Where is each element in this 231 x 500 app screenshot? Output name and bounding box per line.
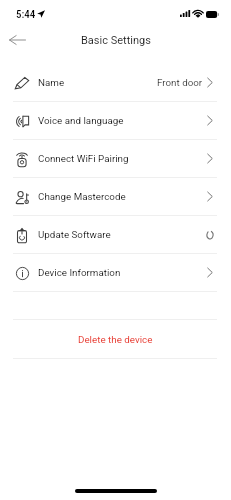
button[interactable]: Connect WiFi Pairing: [0, 140, 231, 177]
staticText: 5:44: [16, 8, 36, 21]
button[interactable]: Device Information: [0, 254, 231, 291]
staticText: Connect WiFi Pairing: [38, 153, 129, 164]
button[interactable]: Delete the device: [0, 320, 231, 358]
button[interactable]: Back: [5, 28, 29, 52]
staticText: Change Mastercode: [38, 191, 126, 202]
staticText: Basic Settings: [81, 34, 151, 47]
staticText: Device Information: [38, 267, 121, 278]
button[interactable]: Name: [0, 64, 231, 101]
staticText: Front door: [157, 77, 203, 88]
button[interactable]: Change Mastercode: [0, 178, 231, 215]
button[interactable]: Update Software: [0, 216, 231, 253]
staticText: Update Software: [38, 229, 111, 240]
staticText: Delete the device: [78, 334, 153, 345]
staticText: Name: [38, 77, 65, 88]
staticText: Voice and language: [38, 115, 124, 126]
button[interactable]: Voice and language: [0, 102, 231, 139]
